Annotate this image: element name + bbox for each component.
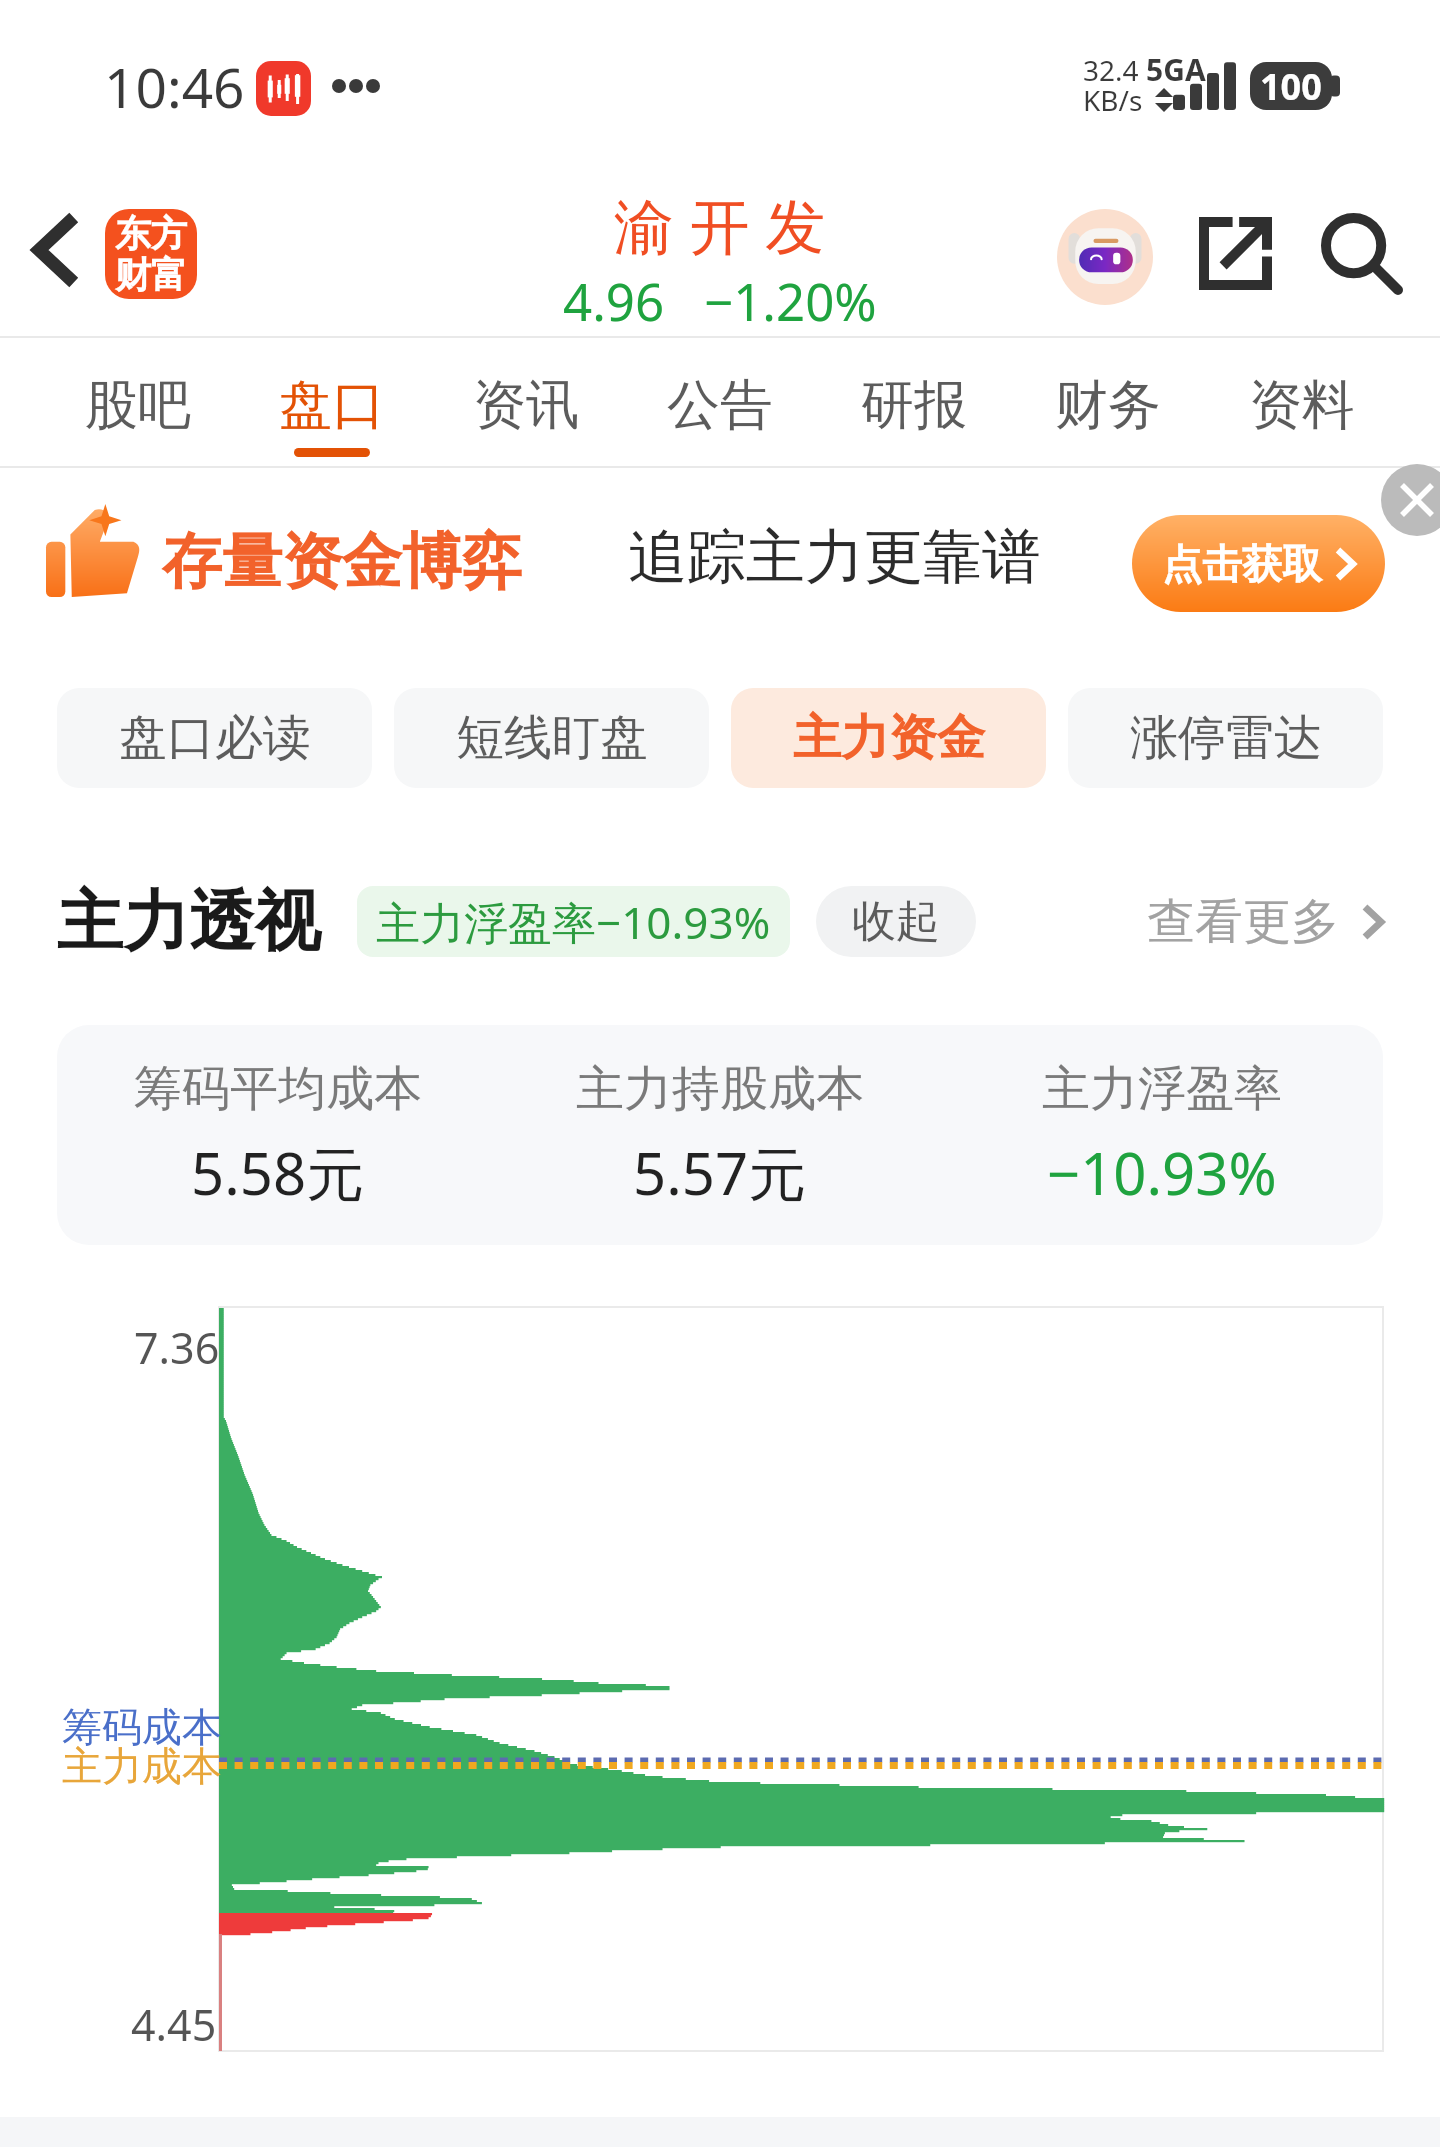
button[interactable]: Close ad [1381, 464, 1440, 536]
button[interactable]: 点击获取 [1132, 515, 1385, 612]
staticText: 7.36 [134, 1318, 220, 1377]
staticText: 主力浮盈率−10.93% [376, 892, 771, 952]
staticText: 主力持股成本 [576, 1059, 864, 1119]
button[interactable]: 收起 [816, 886, 976, 957]
staticText: −10.93% [1047, 1133, 1277, 1212]
button[interactable]: AI assistant [1050, 202, 1160, 312]
staticText: 4.96 −1.20% [563, 266, 877, 335]
staticText: 研报 [861, 372, 967, 439]
staticText: 100 [1260, 62, 1322, 110]
button[interactable]: 股吧 [41, 338, 235, 466]
button[interactable]: 公告 [623, 338, 817, 466]
staticText: 涨停雷达 [1130, 708, 1322, 768]
staticText: 4.45 [131, 1995, 217, 2054]
staticText: 公告 [667, 372, 773, 439]
staticText: 资讯 [473, 372, 579, 439]
staticText: 主力资金 [793, 708, 985, 768]
staticText: 财务 [1055, 372, 1161, 439]
staticText: 筹码平均成本 [134, 1059, 422, 1119]
button[interactable]: 短线盯盘 [394, 688, 709, 788]
button[interactable]: East Money [105, 208, 197, 300]
staticText: 股吧 [85, 372, 191, 439]
staticText: 主力浮盈率 [1042, 1059, 1282, 1119]
staticText: 10:46 [104, 49, 245, 124]
staticText: 查看更多 [1147, 892, 1339, 952]
staticText: 收起 [852, 894, 940, 949]
staticText: 盘口必读 [119, 708, 311, 768]
button[interactable]: 主力资金 [731, 688, 1046, 788]
staticText: 点击获取 [1162, 539, 1322, 589]
staticText: 东方 财富 [115, 211, 187, 298]
staticText: 资料 [1249, 372, 1355, 439]
button[interactable]: 盘口必读 [57, 688, 372, 788]
button[interactable]: Search [1306, 198, 1416, 308]
staticText: 筹码成本 [62, 1702, 222, 1752]
staticText: 追踪主力更靠谱 [628, 520, 1041, 594]
staticText: 短线盯盘 [456, 708, 648, 768]
button[interactable]: 涨停雷达 [1068, 688, 1383, 788]
button[interactable]: 研报 [817, 338, 1011, 466]
staticText: 5.57元 [633, 1133, 807, 1212]
staticText: 盘口 [279, 372, 385, 439]
button[interactable]: 查看更多 [1147, 892, 1383, 952]
staticText: KB/s [1083, 81, 1143, 119]
staticText: 5GA [1146, 49, 1206, 90]
button[interactable]: Share [1180, 198, 1290, 308]
button[interactable]: Back [4, 200, 104, 300]
staticText: 5.58元 [191, 1133, 365, 1212]
staticText: 存量资金博弈 [162, 524, 522, 600]
button[interactable]: 资讯 [429, 338, 623, 466]
staticText: 主力成本 [62, 1741, 222, 1791]
staticText: 主力透视 [57, 880, 321, 963]
button[interactable]: 财务 [1011, 338, 1205, 466]
staticText: 渝 开 发 [614, 184, 826, 266]
staticText: 32.4 [1083, 51, 1139, 89]
button[interactable]: 主力浮盈率−10.93% [357, 886, 790, 957]
button[interactable]: 盘口 [235, 338, 429, 466]
button[interactable]: 资料 [1205, 338, 1399, 466]
